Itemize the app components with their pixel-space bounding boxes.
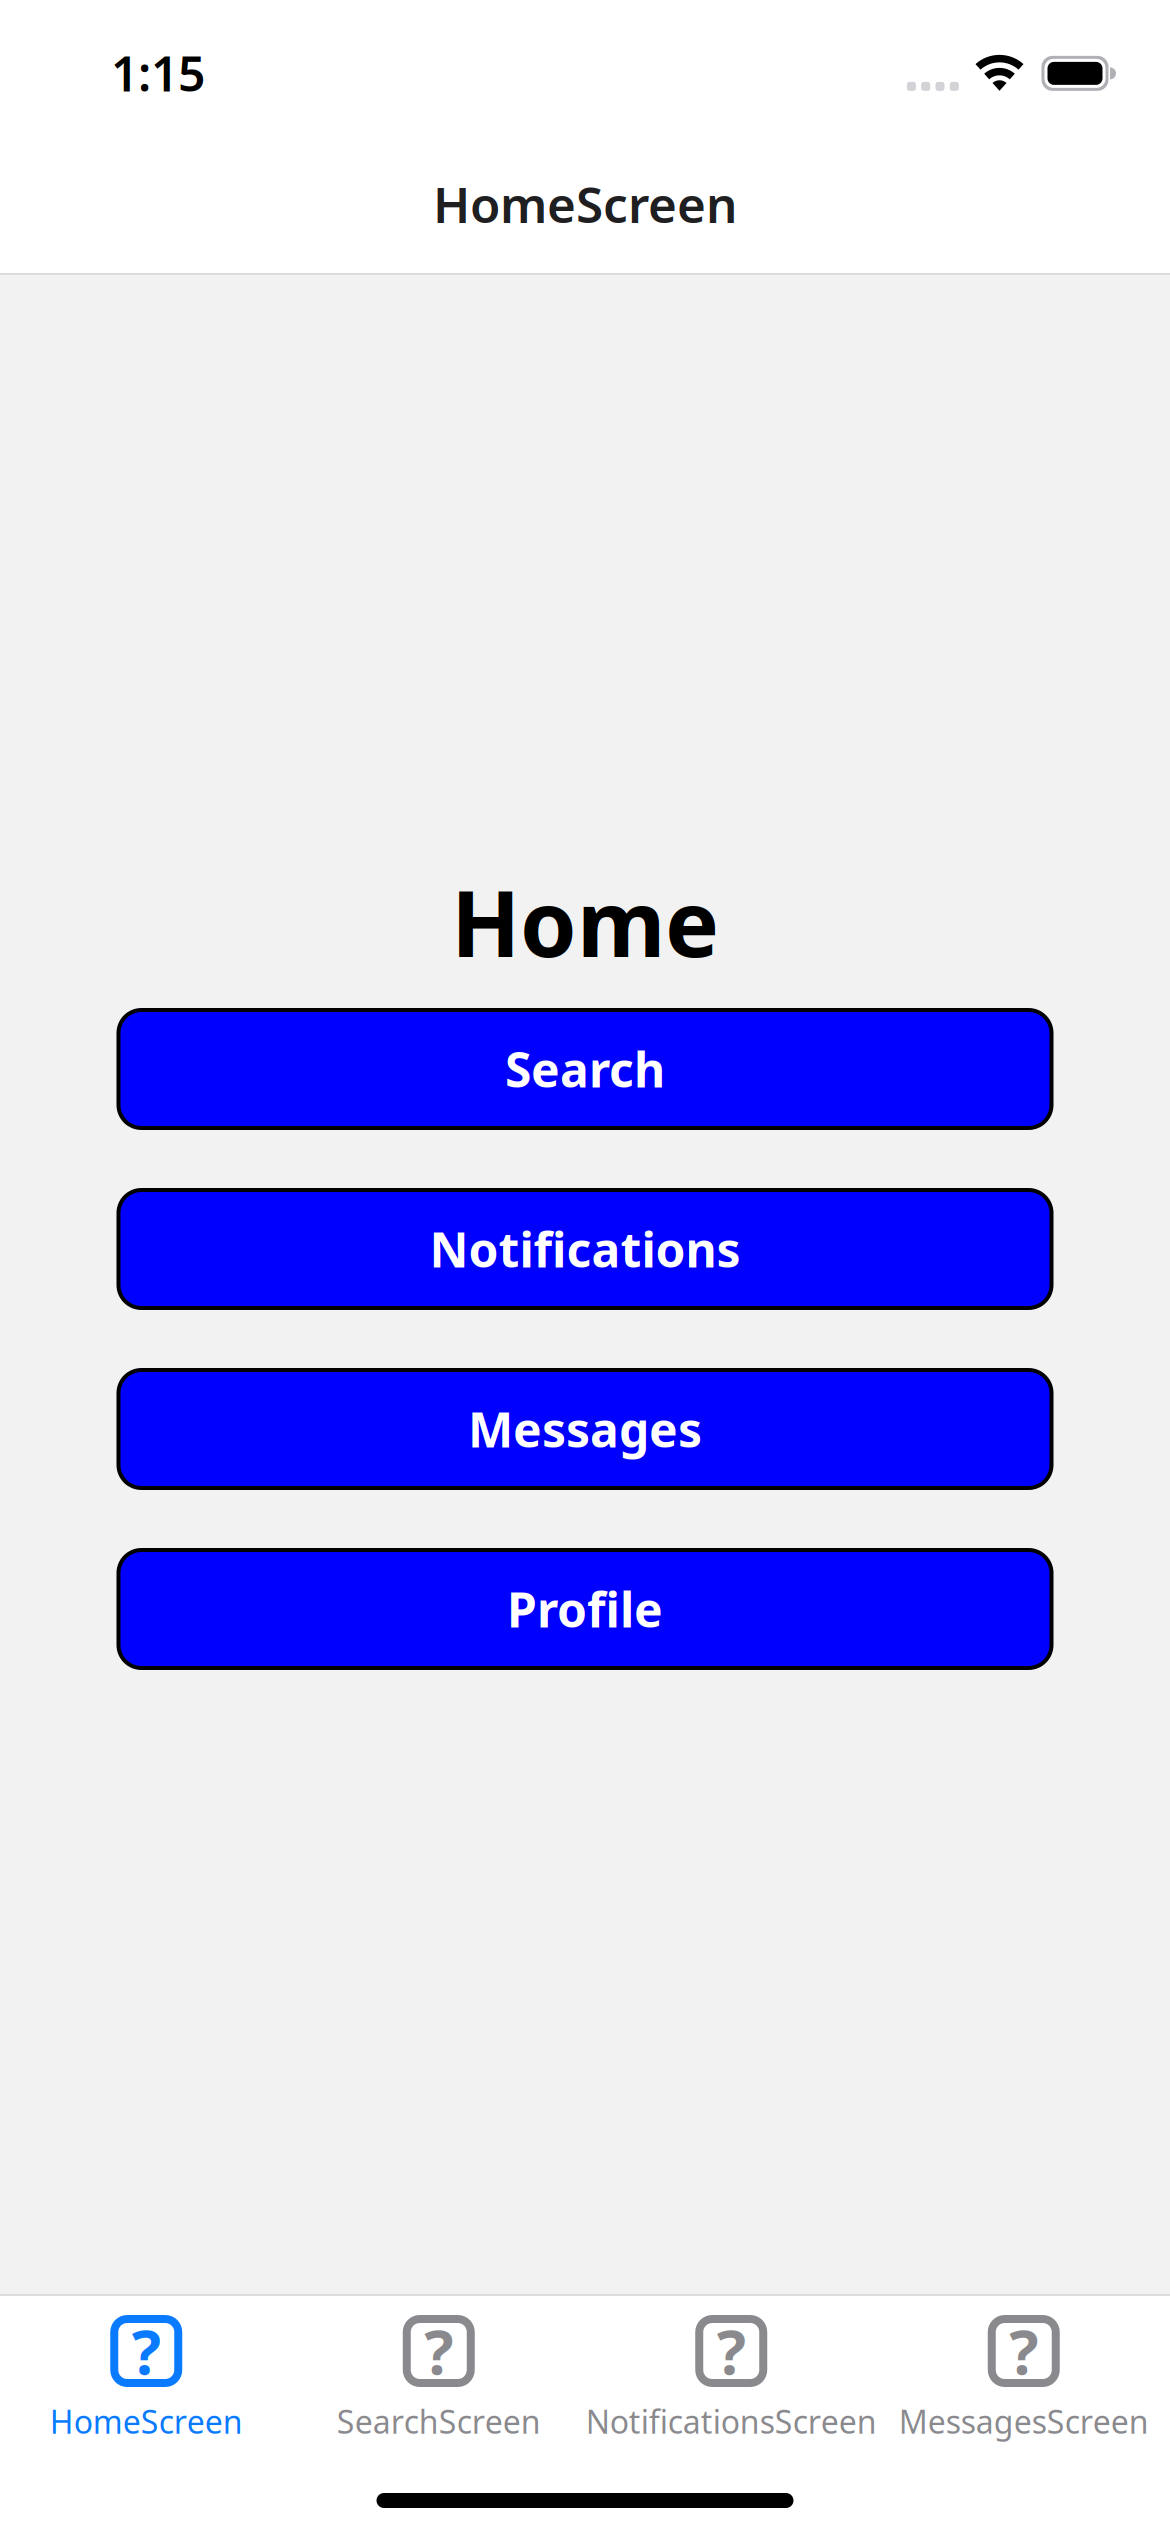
staticText: ? <box>424 2310 453 2392</box>
staticText: Profile <box>507 1577 663 1641</box>
staticText: Search <box>505 1037 665 1101</box>
staticText: MessagesScreen <box>899 2400 1149 2442</box>
button[interactable]: MessagesScreen <box>877 2315 1170 2442</box>
staticText: Home <box>451 862 719 982</box>
button[interactable]: Messages <box>118 1370 1051 1488</box>
button[interactable]: Profile <box>118 1550 1051 1668</box>
staticText: Notifications <box>429 1217 740 1281</box>
staticText: SearchScreen <box>337 2400 541 2442</box>
staticText: NotificationsScreen <box>586 2400 877 2442</box>
staticText: ? <box>717 2310 746 2392</box>
button[interactable]: Notifications <box>118 1190 1051 1308</box>
button[interactable]: SearchScreen <box>292 2315 585 2442</box>
staticText: ? <box>132 2310 161 2392</box>
staticText: HomeScreen <box>50 2400 243 2442</box>
staticText: HomeScreen <box>433 171 737 236</box>
staticText: 1:15 <box>111 41 205 105</box>
staticText: ? <box>1009 2310 1038 2392</box>
button[interactable]: HomeScreen <box>0 2315 292 2442</box>
staticText: Messages <box>468 1397 702 1461</box>
button[interactable]: Search <box>118 1010 1051 1128</box>
button[interactable]: NotificationsScreen <box>585 2315 877 2442</box>
